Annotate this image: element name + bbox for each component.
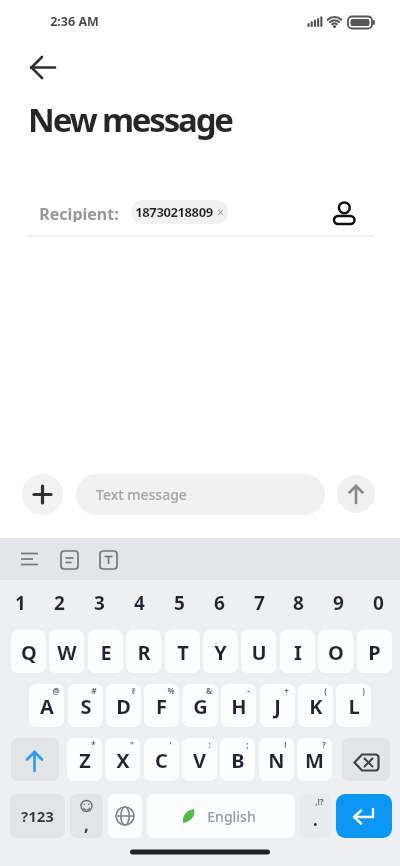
staticText: ,	[84, 813, 89, 836]
staticText: F	[156, 693, 167, 720]
staticText: @	[52, 685, 60, 696]
staticText: 4	[134, 590, 145, 614]
staticText: K	[309, 693, 323, 720]
staticText: Text message	[96, 485, 187, 504]
staticText: "	[130, 739, 134, 750]
staticText: U	[251, 639, 267, 666]
staticText: T	[177, 639, 189, 666]
staticText: )	[362, 685, 365, 696]
staticText: P	[368, 639, 381, 666]
staticText: 5	[174, 590, 185, 614]
staticText: 0	[373, 590, 384, 614]
staticText: N	[268, 747, 285, 774]
staticText: V	[193, 747, 206, 774]
staticText: ,!?	[315, 796, 324, 807]
staticText: A	[40, 693, 54, 720]
staticText: O	[328, 639, 344, 666]
staticText: '	[169, 739, 172, 750]
staticText: 3	[94, 590, 105, 614]
staticText: %	[167, 685, 175, 696]
staticText: !	[284, 739, 287, 750]
staticText: 6	[214, 590, 225, 614]
staticText: Recipient:	[39, 203, 119, 222]
staticText: Z	[79, 747, 91, 774]
staticText: ;	[246, 739, 249, 750]
staticText: 2:36 AM	[50, 13, 99, 30]
staticText: 9	[333, 590, 344, 614]
staticText: #	[91, 685, 97, 696]
staticText: ₹	[131, 685, 136, 696]
staticText: L	[348, 693, 360, 720]
staticText: New message	[28, 97, 232, 142]
staticText: 8	[293, 590, 304, 614]
staticText: ?123	[21, 806, 54, 826]
staticText: 7	[254, 590, 265, 614]
staticText: Y	[214, 639, 227, 666]
staticText: ?	[322, 739, 326, 750]
staticText: :	[208, 739, 211, 750]
staticText: Q	[21, 639, 37, 666]
staticText: +	[284, 685, 289, 696]
staticText: S	[80, 693, 92, 720]
staticText: B	[231, 747, 245, 774]
staticText: E	[100, 639, 112, 666]
staticText: H	[231, 693, 247, 720]
staticText: 1	[15, 590, 26, 614]
staticText: J	[274, 693, 281, 720]
staticText: D	[116, 693, 131, 720]
staticText: X	[116, 747, 130, 774]
staticText: I	[294, 639, 302, 666]
staticText: (	[324, 685, 327, 696]
staticText: R	[137, 639, 151, 666]
staticText: G	[193, 693, 208, 720]
staticText: *	[91, 739, 96, 750]
staticText: -	[247, 685, 250, 696]
staticText: 18730218809	[135, 203, 213, 221]
staticText: C	[155, 747, 168, 774]
staticText: M	[305, 747, 324, 774]
staticText: ×	[217, 204, 224, 220]
staticText: .	[313, 808, 318, 831]
staticText: &	[206, 685, 212, 696]
staticText: W	[57, 639, 77, 666]
staticText: English	[207, 807, 256, 826]
staticText: 2	[54, 590, 65, 614]
